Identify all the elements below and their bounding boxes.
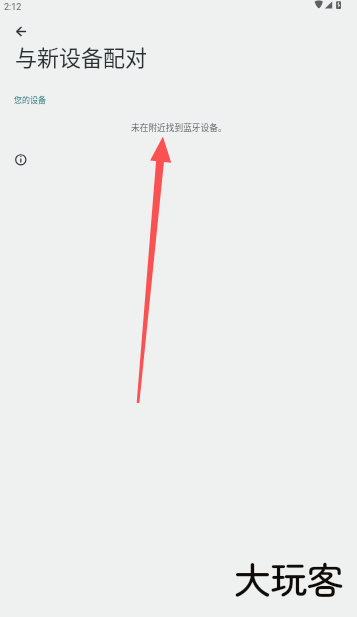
staticText: 2:12 xyxy=(4,2,22,13)
button[interactable]: 您的设备 xyxy=(14,94,46,106)
button[interactable]: Back xyxy=(6,17,35,46)
staticText: 未在附近找到蓝牙设备。 xyxy=(131,121,227,134)
staticText: 大玩客 xyxy=(234,551,343,605)
staticText: 与新设备配对 xyxy=(15,40,148,72)
button[interactable]: More information xyxy=(12,151,30,169)
